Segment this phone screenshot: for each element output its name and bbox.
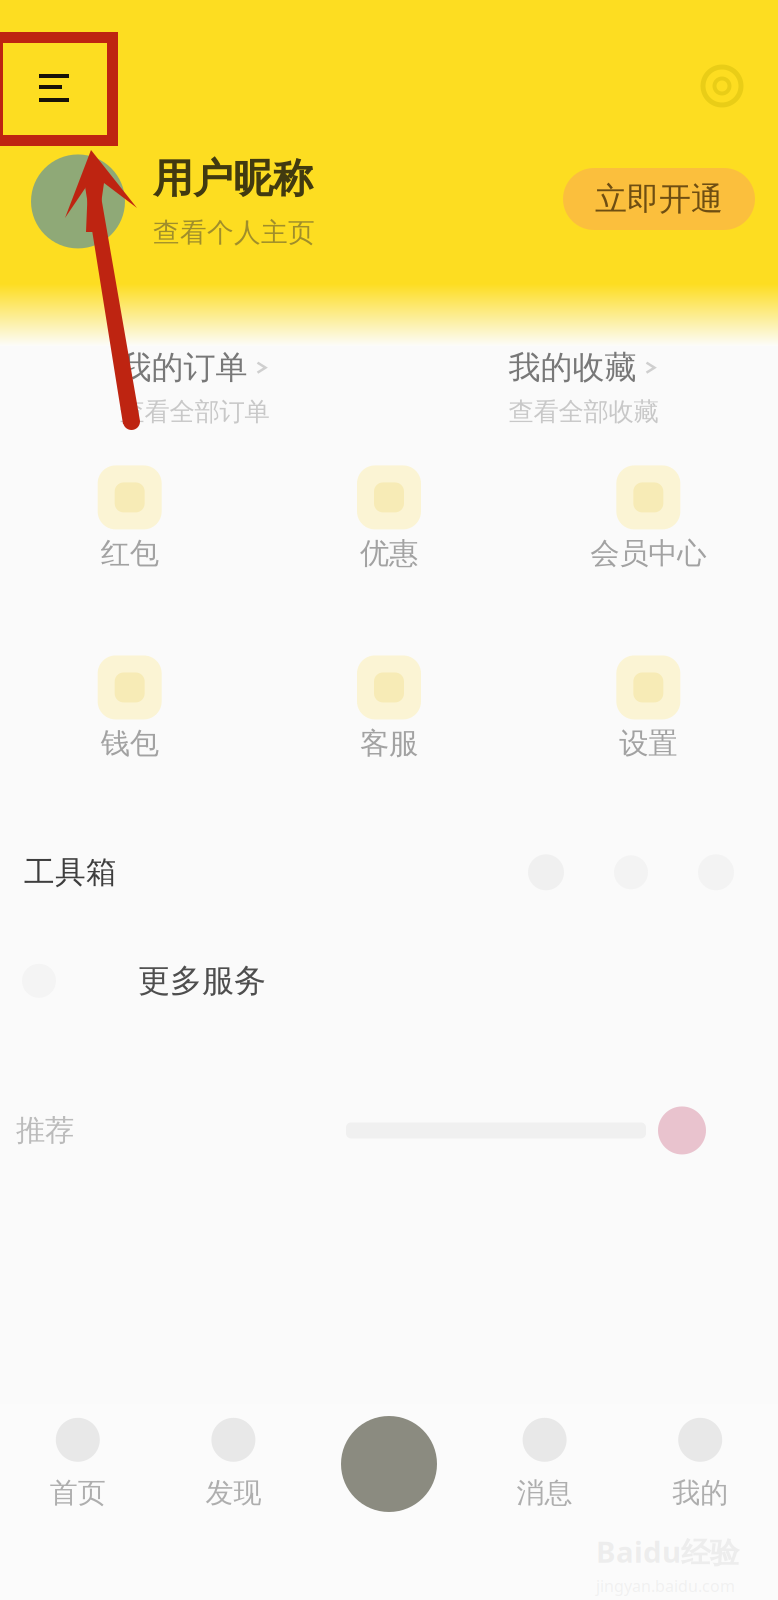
staticText: 查看全部收藏 xyxy=(508,396,658,427)
button[interactable]: 发布 xyxy=(311,1416,467,1512)
staticText: jingyan.baidu.com xyxy=(596,1575,735,1596)
button[interactable]: 优惠 xyxy=(259,465,519,571)
staticText: 推荐 xyxy=(16,1112,74,1148)
button[interactable]: 会员中心 xyxy=(519,465,778,571)
staticText: 会员中心 xyxy=(590,535,706,571)
button[interactable]: 客服 xyxy=(259,655,519,761)
button[interactable]: 钱包 xyxy=(0,655,259,761)
staticText: Baidu经验 xyxy=(596,1532,739,1571)
staticText: 立即开通 xyxy=(595,179,723,219)
staticText: 消息 xyxy=(517,1476,573,1510)
staticText: 用户昵称 xyxy=(153,154,313,203)
button[interactable]: 我的 xyxy=(622,1418,778,1510)
staticText: 设置 xyxy=(619,725,677,761)
staticText: 我的收藏 xyxy=(508,348,636,387)
staticText: 客服 xyxy=(360,725,418,761)
button[interactable]: 菜单 xyxy=(14,48,94,128)
button[interactable]: 红包 xyxy=(0,465,259,571)
staticText: 优惠 xyxy=(360,535,418,571)
staticText: 查看全部订单 xyxy=(119,396,269,427)
button[interactable]: 消息 xyxy=(467,1418,622,1510)
staticText: 我的订单 xyxy=(119,348,247,387)
staticText: 更多服务 xyxy=(138,961,266,1000)
staticText: 钱包 xyxy=(101,725,159,761)
button[interactable]: 用户昵称 xyxy=(31,154,315,249)
button[interactable]: 发现 xyxy=(156,1418,311,1510)
button[interactable]: 我的收藏 xyxy=(389,348,778,427)
button[interactable]: 设置 xyxy=(519,655,778,761)
staticText: 首页 xyxy=(50,1476,106,1510)
button[interactable]: 设置 xyxy=(684,48,760,124)
button[interactable]: 消息提醒 xyxy=(658,1106,706,1154)
button[interactable]: 排序 xyxy=(528,854,564,890)
staticText: 红包 xyxy=(101,535,159,571)
button[interactable]: 立即开通 xyxy=(563,168,755,230)
button[interactable]: 我的订单 xyxy=(0,348,389,427)
staticText: 我的 xyxy=(672,1476,728,1510)
staticText: 工具箱 xyxy=(24,853,117,891)
staticText: 发现 xyxy=(205,1476,261,1510)
staticText: 查看个人主页 xyxy=(153,216,315,249)
button[interactable]: 更多服务 xyxy=(0,961,778,1000)
button[interactable]: 首页 xyxy=(0,1418,156,1510)
